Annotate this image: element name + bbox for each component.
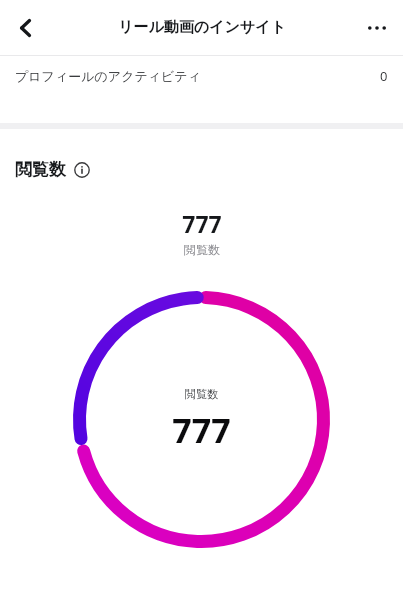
staticText: 閲覧数 (185, 387, 218, 401)
staticText: 777 (182, 208, 222, 239)
button[interactable]: プロフィールのアクティビティ (0, 56, 403, 96)
staticText: プロフィールのアクティビティ (15, 68, 201, 84)
button[interactable]: 閲覧数 (15, 159, 90, 180)
other: Info (74, 162, 90, 178)
staticText: リール動画のインサイト (118, 18, 286, 37)
staticText: 閲覧数 (15, 159, 66, 180)
staticText: 0 (380, 67, 388, 85)
staticText: 閲覧数 (184, 242, 220, 257)
button[interactable]: Back (4, 6, 48, 50)
staticText: 777 (172, 407, 231, 453)
button[interactable]: More options (355, 6, 399, 50)
